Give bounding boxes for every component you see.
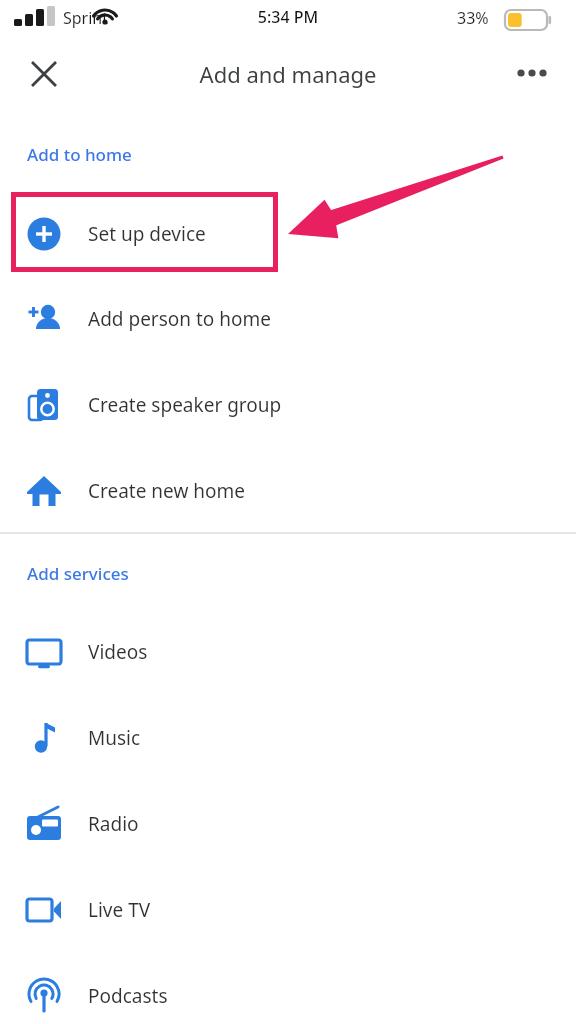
button[interactable]: Videos xyxy=(0,617,576,687)
button[interactable]: Add person to home xyxy=(0,284,576,354)
button[interactable]: Create speaker group xyxy=(0,370,576,440)
staticText: Add services xyxy=(27,562,129,585)
staticText: Set up device xyxy=(88,221,206,247)
staticText: Add and manage xyxy=(0,59,576,89)
button[interactable]: Music xyxy=(0,703,576,773)
button[interactable]: Set up device xyxy=(0,199,576,269)
staticText: Live TV xyxy=(88,897,151,923)
staticText: Videos xyxy=(88,639,148,665)
button[interactable]: Live TV xyxy=(0,875,576,945)
staticText: Add person to home xyxy=(88,306,271,332)
staticText: 5:34 PM xyxy=(0,6,576,28)
staticText: Sprint xyxy=(63,7,109,29)
staticText: Radio xyxy=(88,811,139,837)
button[interactable]: Create new home xyxy=(0,456,576,526)
staticText: 33% xyxy=(457,7,489,29)
staticText: Create new home xyxy=(88,478,246,504)
staticText: Podcasts xyxy=(88,983,168,1009)
button[interactable]: Close xyxy=(20,50,68,98)
button[interactable]: More options xyxy=(508,49,556,97)
button[interactable]: Podcasts xyxy=(0,961,576,1024)
staticText: Create speaker group xyxy=(88,392,282,418)
staticText: Music xyxy=(88,725,141,751)
button[interactable]: Radio xyxy=(0,789,576,859)
staticText: Add to home xyxy=(27,143,132,166)
